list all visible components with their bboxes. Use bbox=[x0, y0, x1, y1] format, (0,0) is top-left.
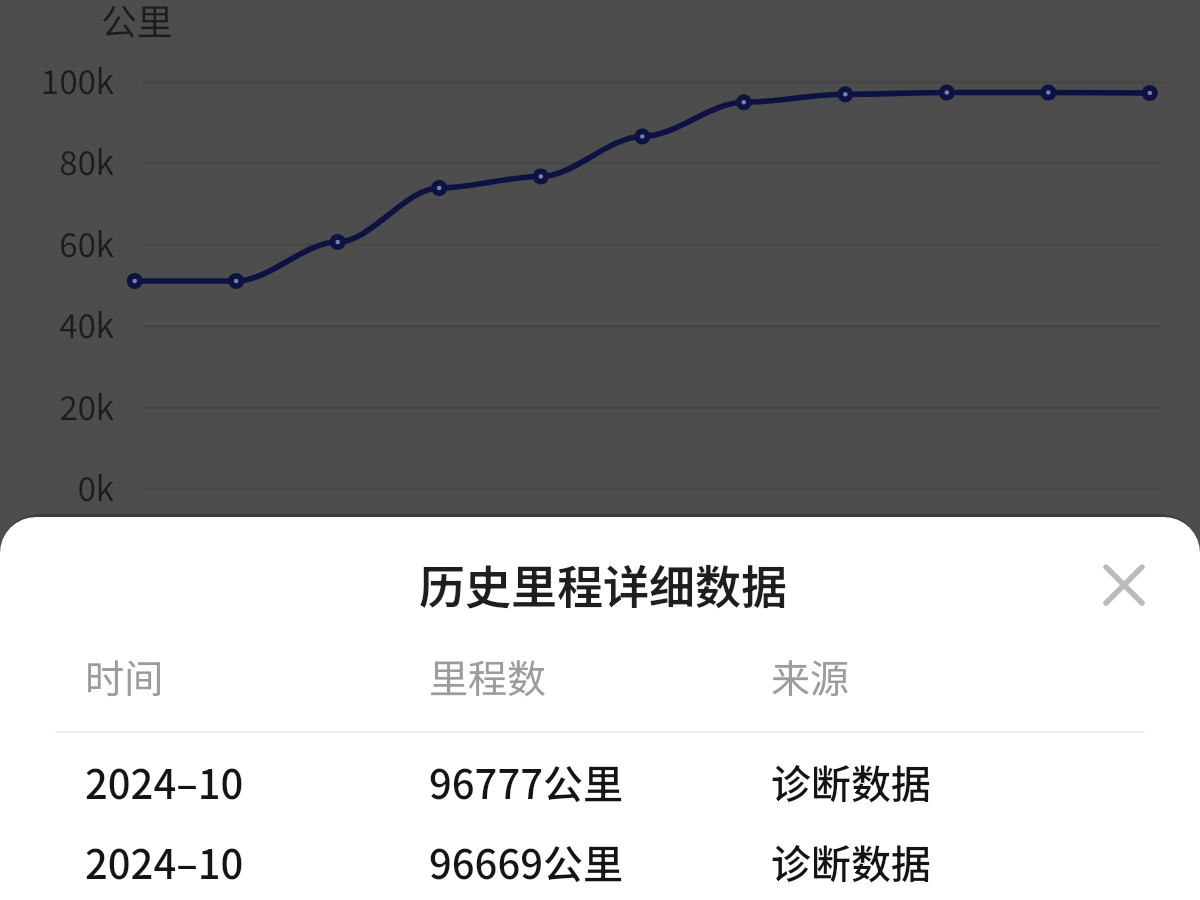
button[interactable]: Dismiss bbox=[0, 0, 1200, 517]
button[interactable]: 2024–10 bbox=[0, 813, 1200, 893]
staticText: 2024–10 bbox=[85, 833, 244, 891]
staticText: 历史里程详细数据 bbox=[419, 551, 787, 618]
staticText: 来源 bbox=[771, 648, 850, 704]
staticText: 96777公里 bbox=[429, 753, 623, 811]
staticText: 96669公里 bbox=[429, 833, 623, 891]
staticText: 2024–10 bbox=[85, 753, 244, 811]
staticText: 100k bbox=[0, 56, 114, 104]
staticText: 40k bbox=[0, 300, 114, 348]
staticText: 诊断数据 bbox=[771, 833, 931, 891]
staticText: 公里 bbox=[101, 0, 174, 45]
staticText: 0k bbox=[0, 463, 114, 511]
staticText: 20k bbox=[0, 382, 114, 430]
staticText: 60k bbox=[0, 219, 114, 267]
staticText: 80k bbox=[0, 137, 114, 185]
staticText: 时间 bbox=[85, 648, 164, 704]
button[interactable]: Close bbox=[1089, 550, 1159, 620]
staticText: 里程数 bbox=[429, 648, 547, 704]
button[interactable]: 2024–10 bbox=[0, 733, 1200, 813]
staticText: 诊断数据 bbox=[771, 753, 931, 811]
